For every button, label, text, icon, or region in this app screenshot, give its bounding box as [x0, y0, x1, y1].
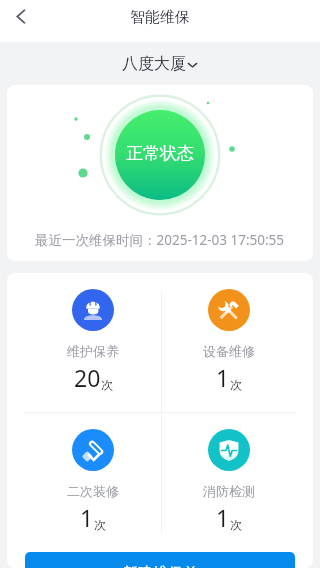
- staticText: 正常状态: [126, 143, 194, 164]
- staticText: 二次装修: [67, 483, 119, 499]
- button[interactable]: 八度大厦: [122, 54, 198, 74]
- staticText: 1: [80, 502, 94, 533]
- staticText: 设备维修: [203, 343, 255, 359]
- staticText: 1: [216, 502, 230, 533]
- staticText: 20: [74, 362, 101, 393]
- staticText: 智能维保: [130, 8, 190, 27]
- staticText: 维护保养: [67, 343, 119, 359]
- staticText: 次: [230, 517, 242, 532]
- button[interactable]: 消防检测: [160, 413, 298, 533]
- staticText: 1: [216, 362, 230, 393]
- button[interactable]: 维护保养: [26, 273, 160, 393]
- staticText: 新建维保单: [123, 564, 198, 568]
- button[interactable]: 新建维保单: [25, 552, 295, 568]
- button[interactable]: 二次装修: [26, 413, 160, 533]
- button[interactable]: Back: [5, 0, 38, 33]
- button[interactable]: 设备维修: [160, 273, 298, 393]
- staticText: 次: [94, 517, 106, 532]
- staticText: 次: [101, 377, 113, 392]
- staticText: 消防检测: [203, 483, 255, 499]
- staticText: 次: [230, 377, 242, 392]
- staticText: 最近一次维保时间：2025-12-03 17:50:55: [35, 231, 285, 249]
- staticText: 八度大厦: [122, 54, 186, 74]
